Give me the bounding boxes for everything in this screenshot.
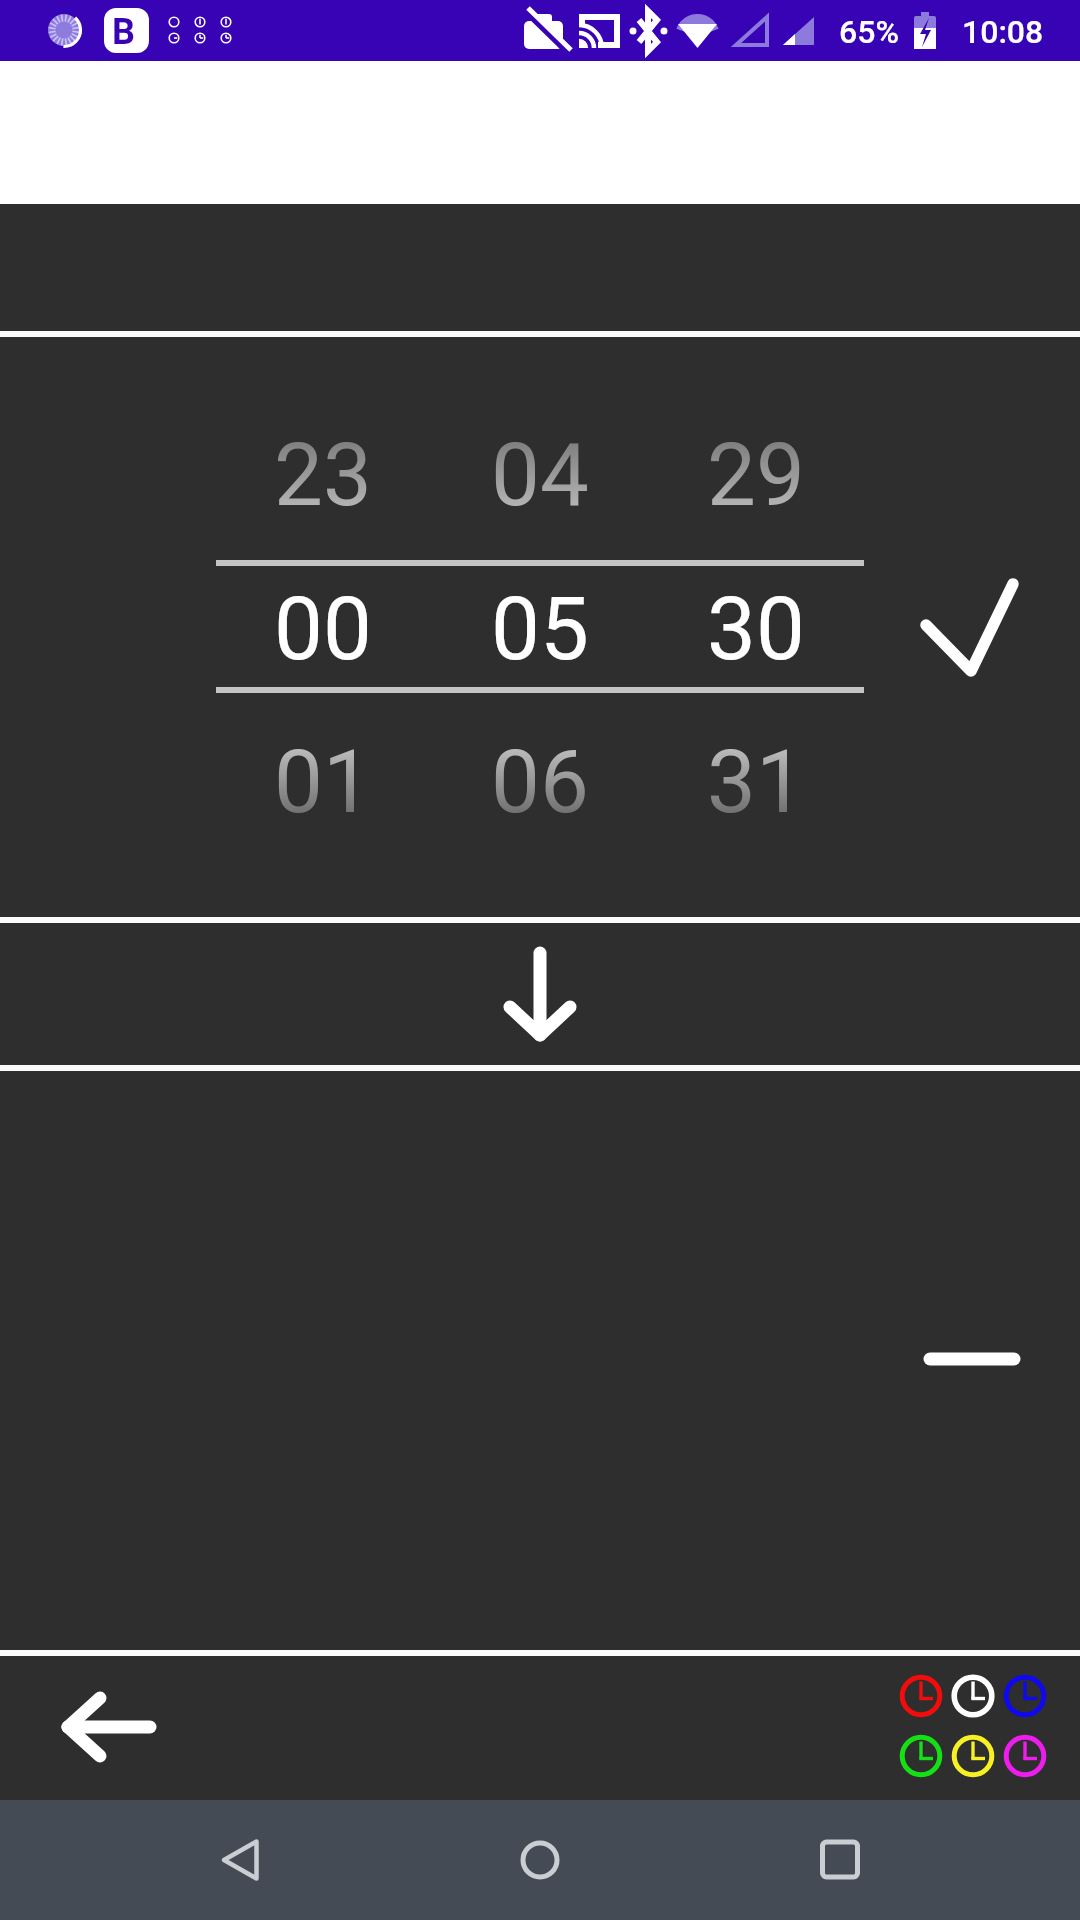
staticText: 30 <box>707 578 805 678</box>
staticText: 29 <box>707 424 805 524</box>
staticText: 01 <box>274 731 372 831</box>
staticText: 04 <box>491 424 589 524</box>
button[interactable]: 29 <box>656 424 856 524</box>
button[interactable]: Colour option <box>947 1670 999 1722</box>
button[interactable]: 06 <box>440 731 640 831</box>
button[interactable]: 04 <box>440 424 640 524</box>
staticText: 31 <box>707 731 805 831</box>
button[interactable]: 30 <box>656 578 856 678</box>
button[interactable]: Back <box>180 1800 300 1920</box>
staticText: 65% <box>839 13 899 51</box>
staticText: 00 <box>274 578 372 678</box>
staticText: 10:08 <box>962 13 1044 51</box>
button[interactable]: Colour option <box>999 1670 1051 1722</box>
button[interactable]: 05 <box>440 578 640 678</box>
staticText: 23 <box>274 424 372 524</box>
staticText: 06 <box>491 731 589 831</box>
button[interactable]: Colour option <box>999 1730 1051 1782</box>
button[interactable]: Colour option <box>895 1730 947 1782</box>
button[interactable]: 31 <box>656 731 856 831</box>
button[interactable]: 01 <box>223 731 423 831</box>
button[interactable]: Recents <box>780 1800 900 1920</box>
button[interactable]: Colour option <box>895 1670 947 1722</box>
button[interactable]: Back <box>30 1671 180 1786</box>
button[interactable]: Colour option <box>947 1730 999 1782</box>
staticText: B <box>112 11 135 53</box>
button[interactable]: 23 <box>223 424 423 524</box>
button[interactable]: Move down <box>470 923 610 1065</box>
button[interactable]: Home <box>480 1800 600 1920</box>
button[interactable]: 00 <box>223 578 423 678</box>
staticText: 05 <box>491 578 589 678</box>
